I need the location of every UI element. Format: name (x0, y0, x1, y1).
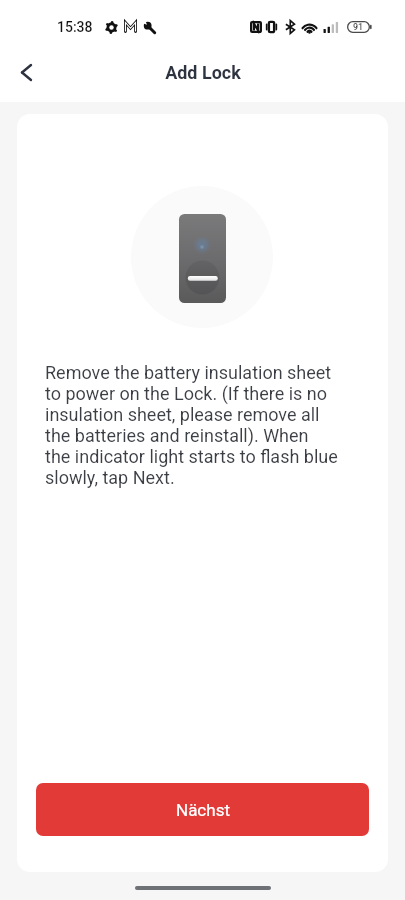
staticText: Remove the battery insulation sheet to p… (45, 362, 338, 488)
staticText: Add Lock (165, 62, 241, 83)
staticText: 91 (353, 22, 364, 33)
staticText: 15:38 (57, 19, 93, 35)
staticText: Nächst (176, 800, 230, 820)
button[interactable]: Nächst (36, 783, 369, 836)
button[interactable]: Back (4, 50, 48, 94)
